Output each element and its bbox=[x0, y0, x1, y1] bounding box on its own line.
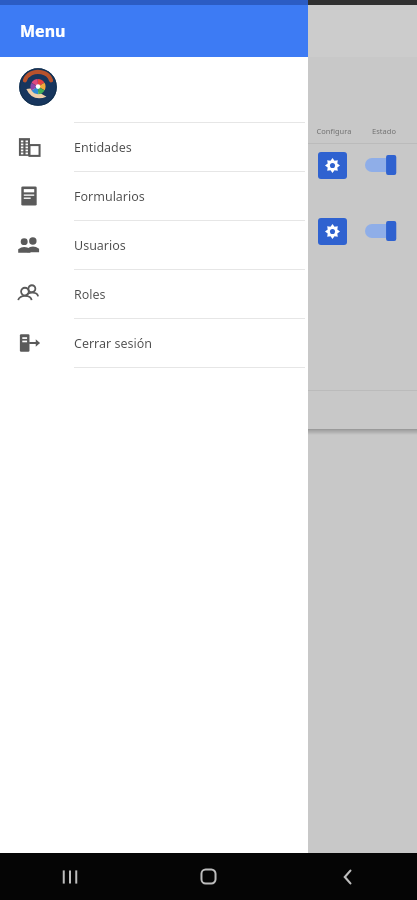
button[interactable]: Usuarios bbox=[0, 221, 308, 269]
button[interactable]: Back bbox=[278, 853, 417, 900]
staticText: Configura bbox=[310, 126, 358, 136]
button[interactable]: Profile bbox=[18, 67, 58, 107]
button[interactable]: Estado bbox=[365, 221, 399, 241]
staticText: Cerrar sesión bbox=[74, 335, 152, 352]
staticText: Formularios bbox=[74, 188, 145, 205]
staticText: Usuarios bbox=[74, 237, 126, 254]
button[interactable]: Formularios bbox=[0, 172, 308, 220]
staticText: Menu bbox=[20, 20, 66, 42]
staticText: Roles bbox=[74, 286, 106, 303]
button[interactable]: Configurar bbox=[318, 218, 347, 245]
staticText: Estado bbox=[358, 126, 410, 136]
button[interactable]: Estado bbox=[365, 155, 399, 175]
button[interactable]: Recent apps bbox=[0, 853, 139, 900]
staticText: Entidades bbox=[74, 139, 132, 156]
button[interactable]: Cerrar sesión bbox=[0, 319, 308, 367]
button[interactable]: Entidades bbox=[0, 123, 308, 171]
button[interactable]: Home bbox=[139, 853, 278, 900]
button[interactable]: Configurar bbox=[318, 152, 347, 179]
button[interactable]: Roles bbox=[0, 270, 308, 318]
